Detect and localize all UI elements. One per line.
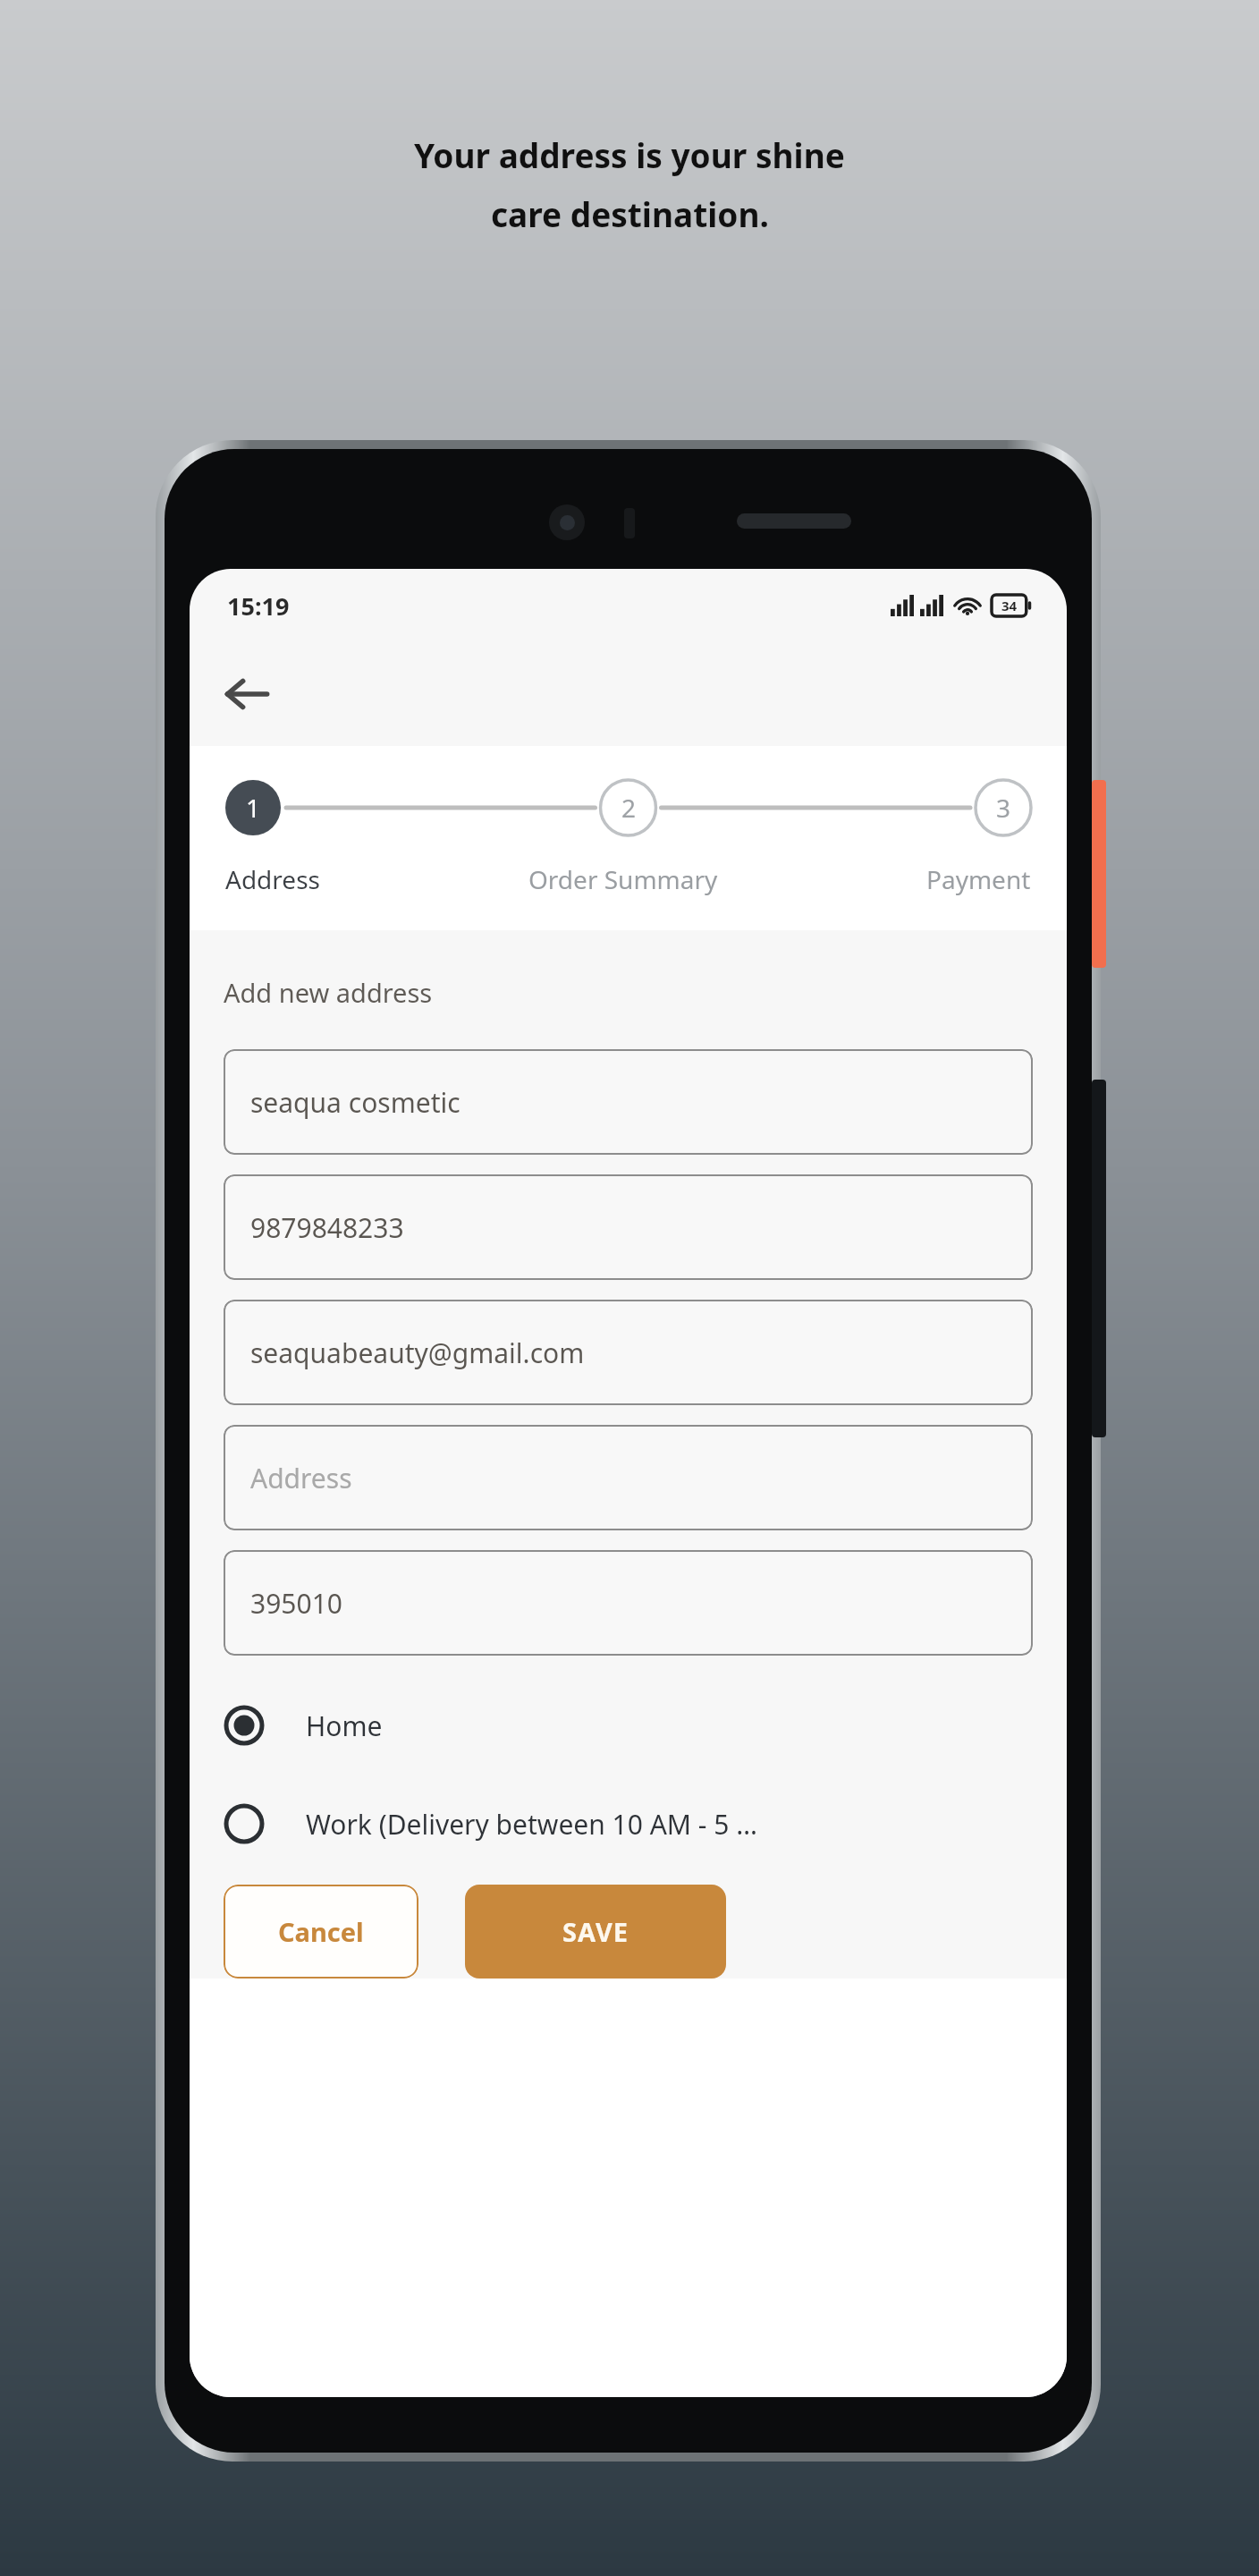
staticText: Address (250, 1460, 352, 1496)
staticText: Home (306, 1707, 383, 1744)
button[interactable]: Cancel (224, 1885, 418, 1979)
button[interactable]: Home (224, 1688, 1033, 1763)
button[interactable]: 9879848233 (224, 1174, 1033, 1280)
button[interactable]: 395010 (224, 1550, 1033, 1656)
staticText: Add new address (224, 975, 433, 1010)
staticText: Work (Delivery between 10 AM - 5 … (306, 1806, 758, 1843)
staticText: seaqua cosmetic (250, 1084, 461, 1121)
staticText: Payment (926, 862, 1031, 896)
staticText: 3 (996, 791, 1011, 825)
button[interactable]: seaquabeauty@gmail.com (224, 1300, 1033, 1405)
staticText: seaquabeauty@gmail.com (250, 1335, 585, 1371)
staticText: 2 (621, 791, 637, 825)
staticText: Cancel (278, 1914, 364, 1949)
staticText: 15:19 (227, 589, 290, 623)
staticText: Address (225, 862, 320, 896)
staticText: Order Summary (528, 862, 718, 896)
button[interactable]: Back (213, 660, 281, 728)
button[interactable]: SAVE (465, 1885, 726, 1979)
staticText: 34 (1001, 597, 1018, 614)
staticText: SAVE (562, 1914, 629, 1949)
button[interactable]: seaqua cosmetic (224, 1049, 1033, 1155)
staticText: care destination. (491, 191, 769, 236)
button[interactable]: Work (Delivery between 10 AM - 5 … (224, 1786, 1033, 1861)
staticText: Your address is your shine (414, 132, 845, 177)
staticText: 1 (246, 791, 261, 825)
staticText: 9879848233 (250, 1209, 404, 1246)
button[interactable]: Address (224, 1425, 1033, 1530)
staticText: 395010 (250, 1585, 342, 1622)
